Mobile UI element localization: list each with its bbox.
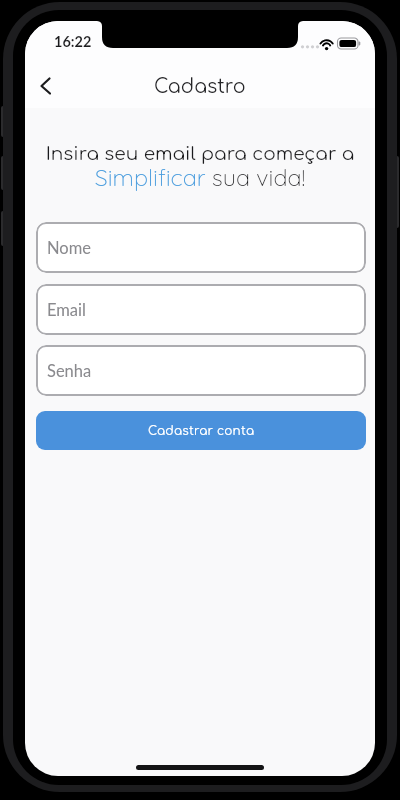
staticText: 16:22 xyxy=(54,33,92,50)
staticText: Email xyxy=(47,300,86,320)
button[interactable]: Senha xyxy=(36,345,366,396)
button[interactable] xyxy=(33,73,63,103)
staticText: Cadastrar conta xyxy=(148,424,255,437)
button[interactable]: Email xyxy=(36,284,366,335)
button[interactable]: Cadastrar conta xyxy=(36,411,366,450)
button[interactable]: Nome xyxy=(36,222,366,273)
staticText: Senha xyxy=(47,361,92,381)
staticText: Nome xyxy=(47,238,91,258)
staticText: Cadastro xyxy=(154,76,246,97)
staticText: Insira seu email para começar a xyxy=(25,144,375,165)
staticText: Simplificar sua vida! xyxy=(25,162,375,191)
